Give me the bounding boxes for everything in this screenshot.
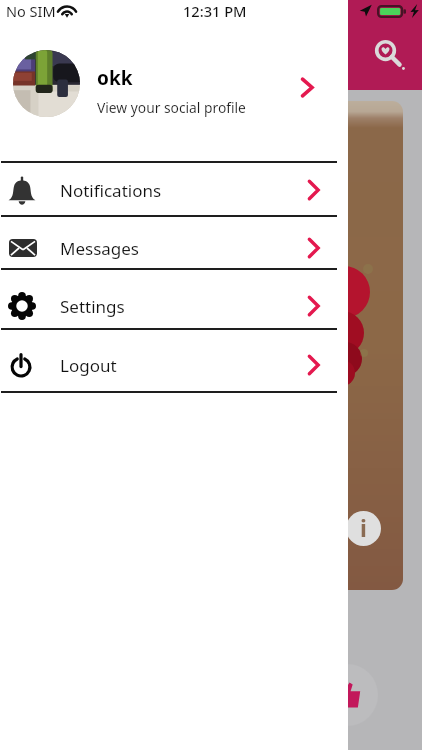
staticText: Messages [60,237,140,260]
button[interactable]: Logout [0,330,348,393]
staticText: Notifications [60,179,162,202]
staticText: Logout [60,354,117,377]
button[interactable]: Like [316,664,378,726]
staticText: 12:31 PM [183,1,247,21]
button[interactable]: Settings [0,270,348,329]
button[interactable]: Messages [0,217,348,270]
button[interactable]: okk [0,50,348,118]
button[interactable]: Notifications [0,163,348,216]
button[interactable]: Search [370,35,410,75]
staticText: View your social profile [97,98,246,117]
staticText: okk [97,65,133,91]
staticText: i [360,512,367,543]
staticText: Settings [60,295,125,318]
staticText: No SIM [6,1,56,21]
button[interactable]: Info [346,511,381,546]
